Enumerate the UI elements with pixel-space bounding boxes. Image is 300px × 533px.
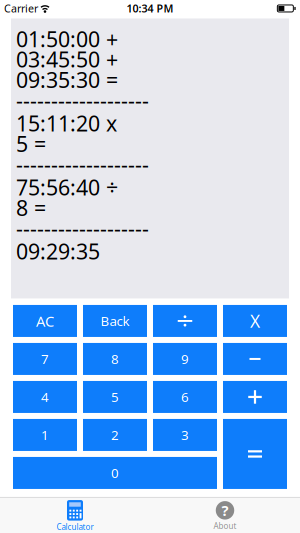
- button[interactable]: 4: [13, 381, 77, 413]
- button[interactable]: Equals: [223, 419, 287, 489]
- staticText: 7: [41, 350, 49, 368]
- button[interactable]: Subtract: [223, 343, 287, 375]
- staticText: 1: [41, 426, 49, 444]
- button[interactable]: 5: [83, 381, 147, 413]
- staticText: 03:45:50 +: [16, 45, 118, 73]
- staticText: -------------------: [16, 150, 149, 178]
- button[interactable]: 9: [153, 343, 217, 375]
- staticText: 2: [111, 426, 119, 444]
- staticText: 09:29:35: [16, 237, 100, 265]
- staticText: 09:35:30 =: [16, 66, 118, 94]
- staticText: Calculator: [56, 522, 93, 532]
- button[interactable]: X: [223, 305, 287, 337]
- staticText: 9: [181, 350, 189, 368]
- staticText: AC: [36, 311, 54, 331]
- staticText: 0: [111, 464, 119, 482]
- button[interactable]: Add: [223, 381, 287, 413]
- button[interactable]: Back: [83, 305, 147, 337]
- staticText: 8 =: [16, 194, 46, 222]
- staticText: Carrier: [4, 1, 38, 16]
- staticText: Back: [100, 312, 129, 330]
- staticText: 6: [181, 388, 189, 406]
- staticText: About: [213, 521, 236, 531]
- button[interactable]: 1: [13, 419, 77, 451]
- staticText: 4: [41, 388, 49, 406]
- button[interactable]: 3: [153, 419, 217, 451]
- button[interactable]: Calculator: [0, 498, 150, 533]
- staticText: 01:50:00 +: [16, 25, 118, 53]
- button[interactable]: 8: [83, 343, 147, 375]
- button[interactable]: 0: [13, 457, 217, 489]
- staticText: 5 =: [16, 130, 46, 158]
- staticText: 3: [181, 426, 189, 444]
- button[interactable]: Divide: [153, 305, 217, 337]
- button[interactable]: 2: [83, 419, 147, 451]
- staticText: -------------------: [16, 214, 149, 242]
- button[interactable]: AC: [13, 305, 77, 337]
- staticText: 15:11:20 x: [16, 109, 117, 137]
- staticText: 75:56:40 ÷: [16, 173, 118, 201]
- staticText: ?: [221, 501, 228, 520]
- staticText: 8: [111, 350, 119, 368]
- staticText: 10:34 PM: [126, 1, 173, 16]
- staticText: -------------------: [16, 86, 149, 114]
- staticText: X: [250, 309, 260, 332]
- button[interactable]: 6: [153, 381, 217, 413]
- button[interactable]: ?: [150, 498, 300, 533]
- button[interactable]: 7: [13, 343, 77, 375]
- staticText: 5: [111, 388, 119, 406]
